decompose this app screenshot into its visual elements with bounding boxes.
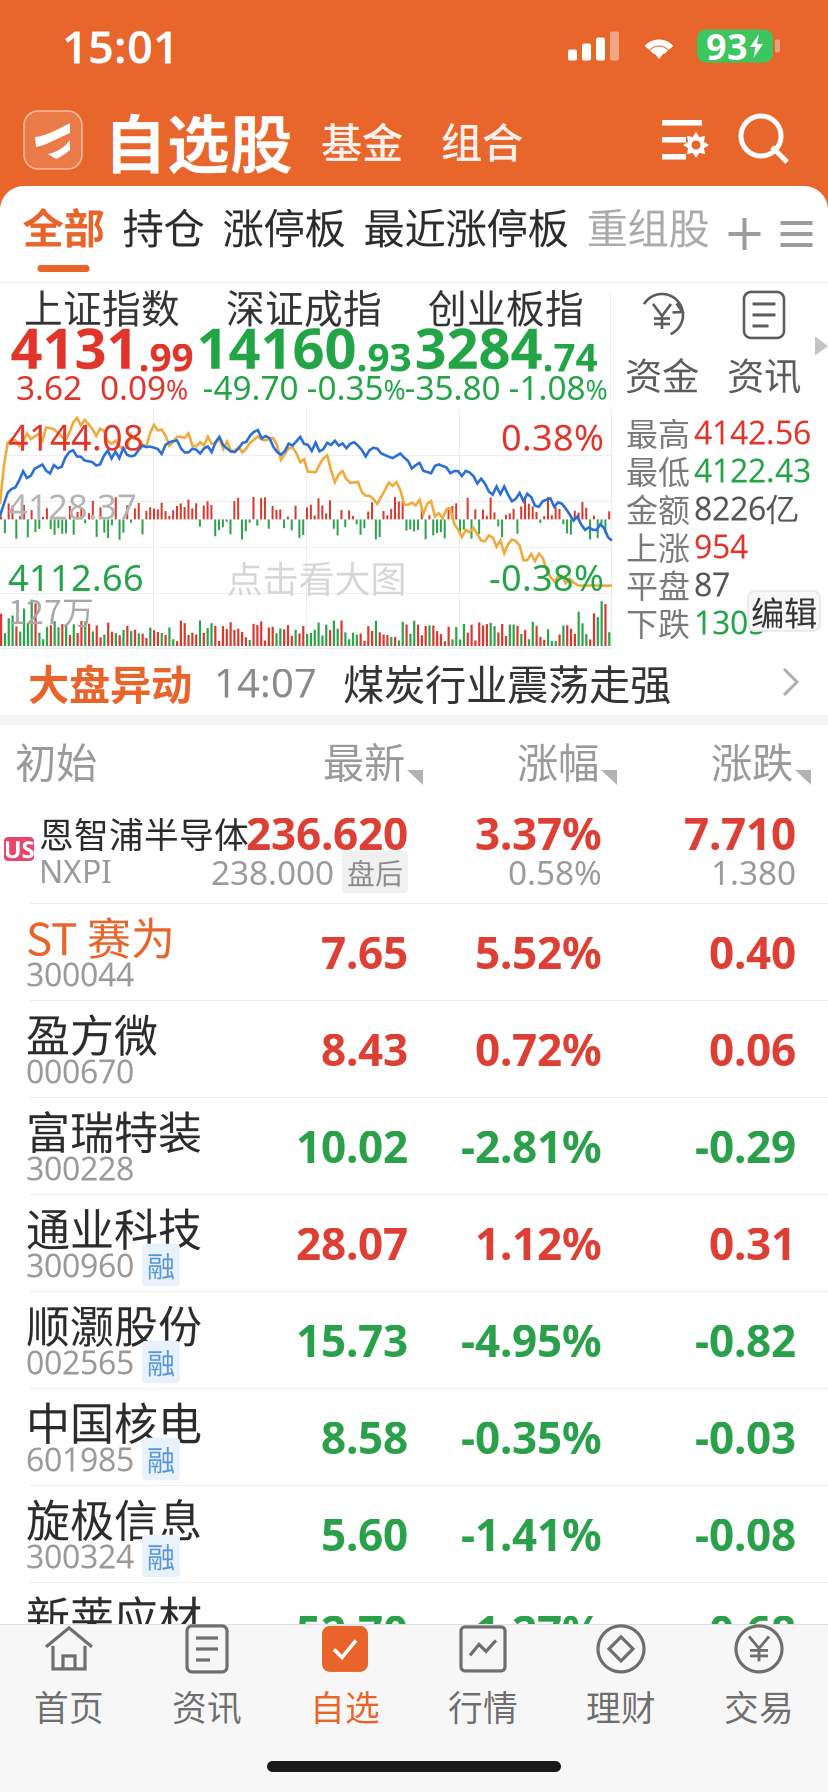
button[interactable]: 资金: [611, 291, 713, 401]
button[interactable]: 持仓: [113, 186, 213, 282]
staticText: 顺灏股份: [26, 1292, 202, 1356]
staticText: 上证指数: [24, 278, 180, 334]
staticText: %: [166, 372, 188, 407]
staticText: 8.43: [321, 1020, 408, 1078]
staticText: 127万: [8, 587, 94, 633]
button[interactable]: 资讯: [713, 291, 815, 401]
staticText: 涨跌: [711, 730, 793, 790]
staticText: 基金: [321, 110, 403, 170]
button[interactable]: 交易: [690, 1625, 828, 1731]
staticText: 组合: [441, 110, 523, 170]
button[interactable]: 基金: [309, 98, 415, 182]
button[interactable]: 管理分组: [770, 218, 822, 250]
staticText: 000670: [26, 1050, 134, 1092]
button[interactable]: ST 赛为: [0, 904, 828, 1001]
button[interactable]: 首页: [0, 1625, 138, 1731]
staticText: 28.07: [296, 1214, 408, 1272]
staticText: 行情: [448, 1681, 518, 1731]
button[interactable]: 自选: [276, 1625, 414, 1731]
button[interactable]: 编辑: [748, 591, 820, 631]
button[interactable]: 重组股: [577, 186, 718, 282]
staticText: 资讯: [172, 1681, 242, 1731]
button[interactable]: 最近涨停板: [354, 186, 577, 282]
staticText: 旋极信息: [26, 1486, 202, 1550]
staticText: %: [585, 372, 607, 407]
staticText: -1.27%: [461, 1602, 602, 1660]
staticText: 8226亿: [694, 487, 798, 529]
staticText: 大盘异动: [28, 652, 192, 712]
button[interactable]: 行情: [414, 1625, 552, 1731]
button[interactable]: 旋极信息: [0, 1486, 828, 1583]
staticText: 1305: [694, 601, 766, 643]
staticText: 初始: [15, 730, 97, 790]
button[interactable]: 资讯: [138, 1625, 276, 1731]
staticText: 15.73: [296, 1311, 408, 1369]
staticText: 0.06: [709, 1020, 796, 1078]
staticText: 10.02: [296, 1117, 408, 1175]
staticText: -1.41%: [461, 1505, 602, 1563]
button[interactable]: 最新: [265, 730, 423, 790]
staticText: 首页: [34, 1681, 104, 1731]
staticText: 最低: [626, 447, 690, 493]
staticText: 0.40: [709, 923, 796, 981]
button[interactable]: 搜索: [710, 115, 790, 165]
staticText: 300324: [26, 1535, 134, 1577]
button[interactable]: 富瑞特装: [0, 1098, 828, 1195]
staticText: 资金: [625, 347, 699, 401]
staticText: 3.37%: [475, 804, 602, 862]
button[interactable]: 自选股: [0, 95, 293, 185]
staticText: 中国核电: [26, 1389, 202, 1453]
staticText: 自选: [310, 1681, 380, 1731]
staticText: 236.620: [246, 804, 408, 862]
staticText: 融: [147, 1342, 175, 1382]
button[interactable]: 中国核电: [0, 1389, 828, 1486]
button[interactable]: 新莱应材: [0, 1583, 828, 1680]
button[interactable]: 深证成指: [202, 288, 406, 404]
button[interactable]: 全部: [13, 186, 113, 282]
staticText: 1.380: [711, 850, 796, 894]
button[interactable]: 通业科技: [0, 1195, 828, 1292]
staticText: 创业板指: [428, 278, 584, 334]
button[interactable]: 组合: [429, 98, 535, 182]
button[interactable]: 筛选设置: [662, 116, 710, 164]
staticText: 3284: [414, 310, 542, 384]
button[interactable]: 顺灏股份: [0, 1292, 828, 1389]
staticText: 0.58%: [508, 850, 602, 894]
staticText: 4122.43: [694, 449, 811, 491]
staticText: 融: [147, 1439, 175, 1479]
staticText: 0.72%: [475, 1020, 602, 1078]
button[interactable]: 盈方微: [0, 1001, 828, 1098]
staticText: US: [3, 833, 34, 865]
staticText: -35.80: [404, 365, 500, 409]
staticText: 重组股: [586, 196, 709, 255]
staticText: 编辑: [751, 587, 817, 635]
staticText: .74: [542, 331, 597, 382]
button[interactable]: 涨跌: [617, 730, 811, 790]
staticText: 954: [694, 525, 748, 567]
staticText: 最近涨停板: [363, 196, 568, 255]
staticText: 0.09: [100, 365, 166, 409]
button[interactable]: 涨停板: [213, 186, 354, 282]
staticText: 平盘: [626, 561, 690, 607]
button[interactable]: 创业板指: [406, 288, 606, 404]
staticText: 14:07: [214, 655, 317, 708]
button[interactable]: 涨幅: [423, 730, 617, 790]
button[interactable]: 大盘异动: [0, 649, 828, 715]
staticText: 300044: [26, 953, 134, 995]
staticText: 深证成指: [226, 278, 382, 334]
staticText: 300260: [26, 1632, 134, 1674]
button[interactable]: 上证指数: [2, 288, 202, 404]
staticText: 最高: [626, 409, 690, 455]
staticText: 金额: [626, 485, 690, 531]
staticText: 4112.66: [8, 553, 144, 601]
button[interactable]: 添加分组: [718, 218, 770, 250]
staticText: 全部: [22, 196, 104, 255]
staticText: -1.08: [508, 365, 585, 409]
staticText: -4.95%: [461, 1311, 602, 1369]
button[interactable]: 理财: [552, 1625, 690, 1731]
staticText: 点击看大图: [226, 551, 406, 603]
button[interactable]: US: [0, 795, 828, 904]
staticText: 理财: [586, 1681, 656, 1731]
staticText: -49.70: [202, 365, 298, 409]
